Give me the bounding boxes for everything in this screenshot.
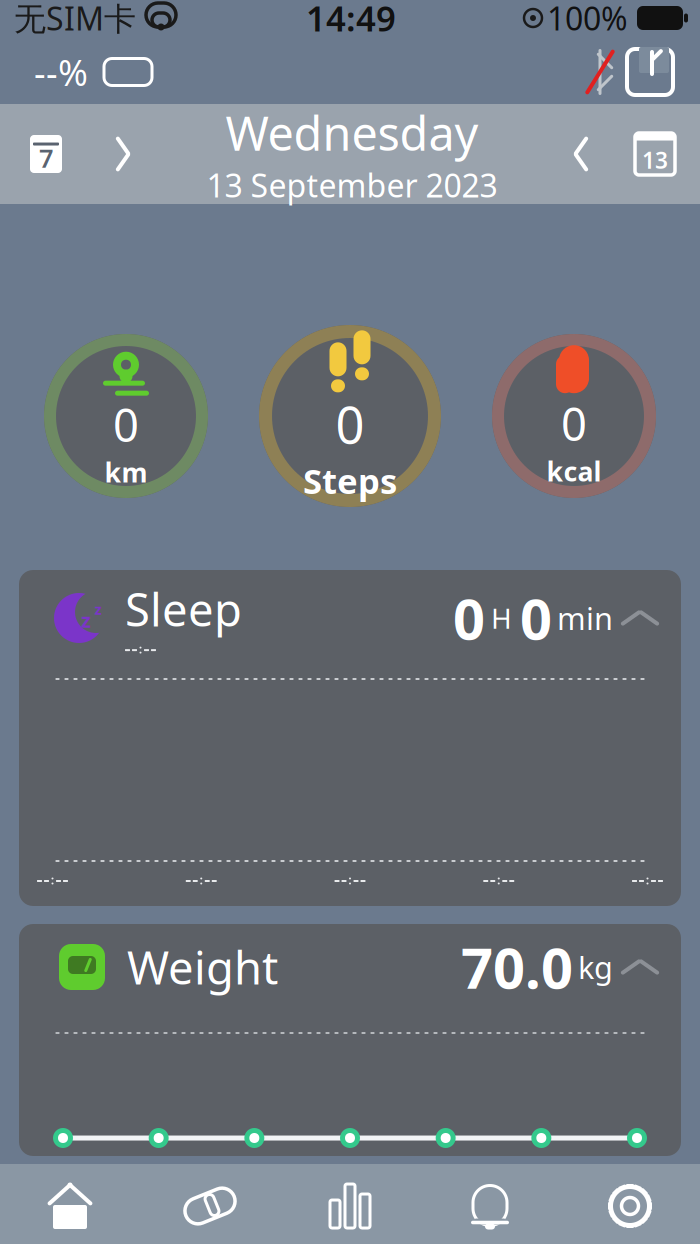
staticText: Weight xyxy=(127,937,278,997)
button[interactable]: 0 xyxy=(252,318,447,513)
staticText: Wednesday xyxy=(225,102,478,164)
staticText: kg xyxy=(578,947,613,987)
staticText: 无SIM卡 xyxy=(14,0,136,39)
staticText: Sleep xyxy=(125,579,242,639)
staticText: Steps xyxy=(303,458,397,504)
button[interactable]: Next day xyxy=(556,129,606,179)
button[interactable]: Share xyxy=(622,44,678,100)
staticText: 13 September 2023 xyxy=(206,164,497,206)
staticText: 70.0 xyxy=(461,930,573,1004)
staticText: 0 xyxy=(453,581,485,655)
button[interactable]: Alerts xyxy=(420,1164,560,1244)
button[interactable]: Activity xyxy=(140,1164,280,1244)
staticText: km xyxy=(104,454,147,490)
staticText: 0 xyxy=(561,393,587,453)
staticText: 100% xyxy=(547,0,628,39)
button[interactable]: Previous day xyxy=(98,129,148,179)
button[interactable]: z xyxy=(19,570,681,906)
staticText: kcal xyxy=(546,453,601,489)
staticText: 0 xyxy=(113,394,139,454)
button[interactable]: 0 xyxy=(486,328,662,504)
button[interactable]: Weight xyxy=(19,924,681,1156)
staticText: z xyxy=(81,607,91,633)
staticText: 13 xyxy=(642,145,668,175)
staticText: 0 xyxy=(335,390,364,458)
staticText: z xyxy=(94,599,101,619)
button[interactable]: Settings xyxy=(560,1164,700,1244)
staticText: 7 xyxy=(39,141,53,175)
button[interactable]: Home xyxy=(0,1164,140,1244)
staticText: 0 xyxy=(520,581,552,655)
button[interactable]: Bluetooth off xyxy=(578,46,622,98)
button[interactable]: 0 xyxy=(38,328,214,504)
staticText: min xyxy=(557,598,613,638)
button[interactable]: Statistics xyxy=(280,1164,420,1244)
button[interactable]: Week view xyxy=(20,128,72,180)
staticText: H xyxy=(491,599,512,637)
button[interactable]: Calendar xyxy=(628,126,682,182)
staticText: 14:49 xyxy=(306,0,396,41)
staticText: --% xyxy=(34,48,88,96)
